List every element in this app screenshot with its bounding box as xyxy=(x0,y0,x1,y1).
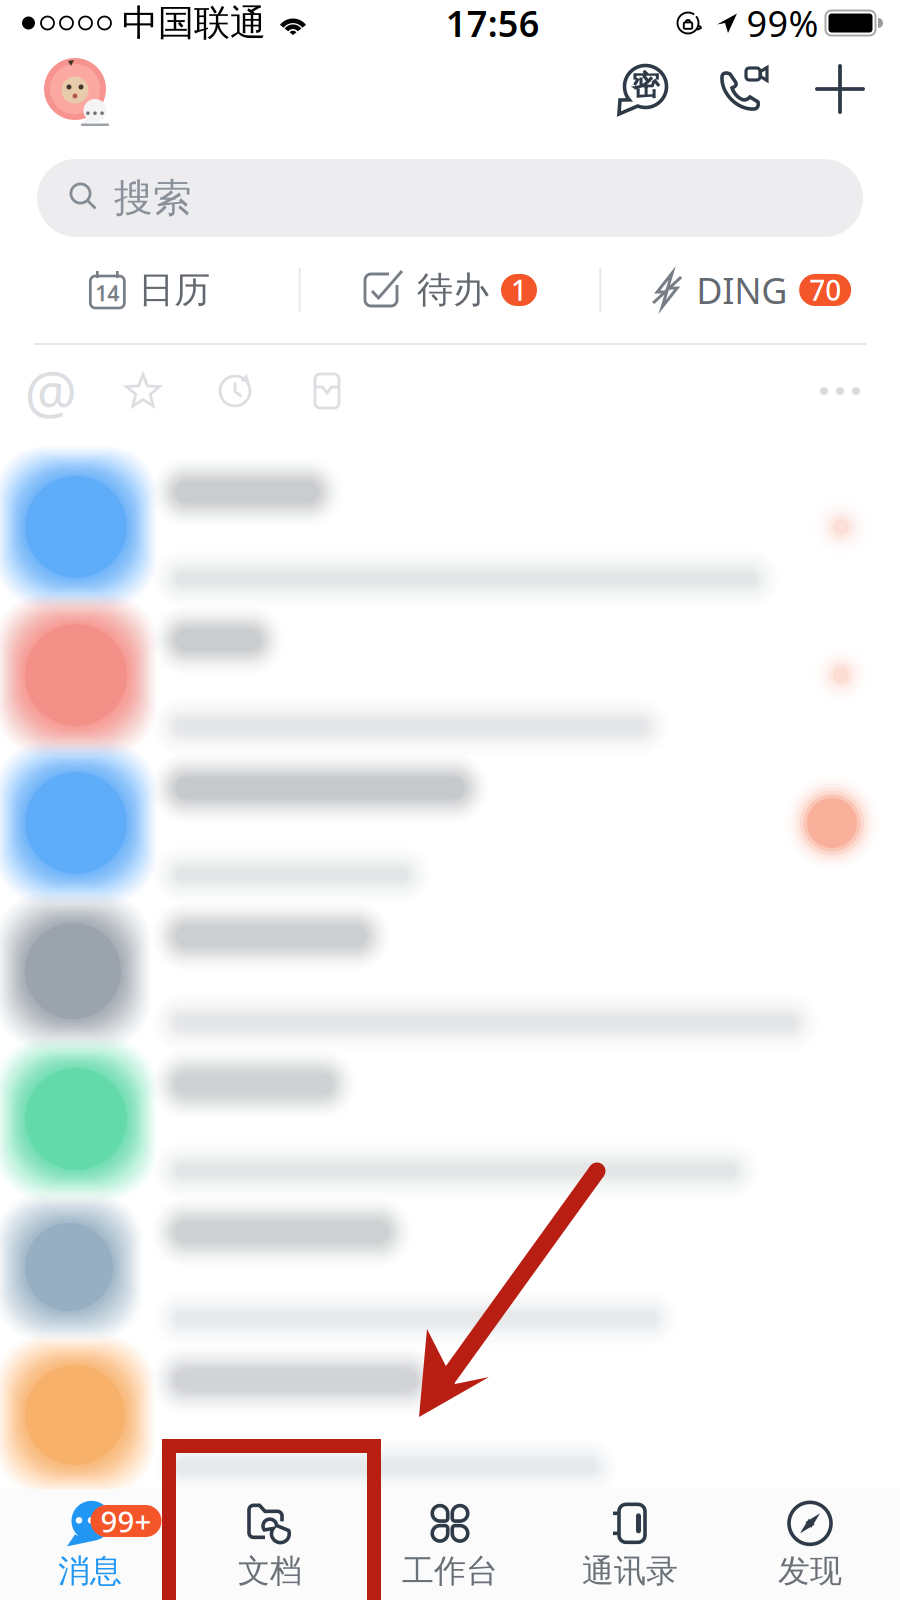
button[interactable]: Archive xyxy=(299,363,355,419)
staticText: 密 xyxy=(631,68,659,103)
staticText: 消息 xyxy=(58,1551,122,1591)
button[interactable]: 搜索 xyxy=(0,159,900,237)
staticText: 工作台 xyxy=(402,1551,498,1591)
button[interactable]: Video call xyxy=(702,51,786,127)
staticText: 14 xyxy=(95,279,119,307)
staticText: 文档 xyxy=(238,1551,302,1591)
button[interactable]: 待办 xyxy=(301,252,599,328)
staticText: 70 xyxy=(809,271,841,309)
staticText: @ xyxy=(24,352,77,430)
button[interactable]: 消息 xyxy=(0,1489,180,1600)
button[interactable]: Add xyxy=(800,51,880,127)
button[interactable]: More xyxy=(806,373,874,409)
button[interactable]: Mentions xyxy=(23,363,79,419)
staticText: 99% xyxy=(746,0,818,47)
button[interactable]: Recent xyxy=(207,363,263,419)
staticText: 日历 xyxy=(138,268,210,312)
button[interactable]: Profile xyxy=(0,41,127,137)
staticText: 中国联通 xyxy=(122,1,266,45)
button[interactable]: 文档 xyxy=(180,1489,360,1600)
staticText: DING xyxy=(696,266,787,314)
staticText: 17:56 xyxy=(446,0,540,47)
staticText: 搜索 xyxy=(114,174,192,222)
button[interactable]: 通讯录 xyxy=(540,1489,720,1600)
button[interactable]: 工作台 xyxy=(360,1489,540,1600)
staticText: 发现 xyxy=(778,1551,842,1591)
button[interactable]: Starred xyxy=(115,363,171,419)
button[interactable]: Secret chat xyxy=(602,50,684,128)
button[interactable]: 发现 xyxy=(720,1489,900,1600)
button[interactable]: DING xyxy=(601,252,900,328)
button[interactable]: 14 xyxy=(0,252,299,328)
staticText: 1 xyxy=(511,271,527,309)
staticText: 99+ xyxy=(100,1501,151,1540)
staticText: 通讯录 xyxy=(582,1551,678,1591)
staticText: 待办 xyxy=(417,268,489,312)
